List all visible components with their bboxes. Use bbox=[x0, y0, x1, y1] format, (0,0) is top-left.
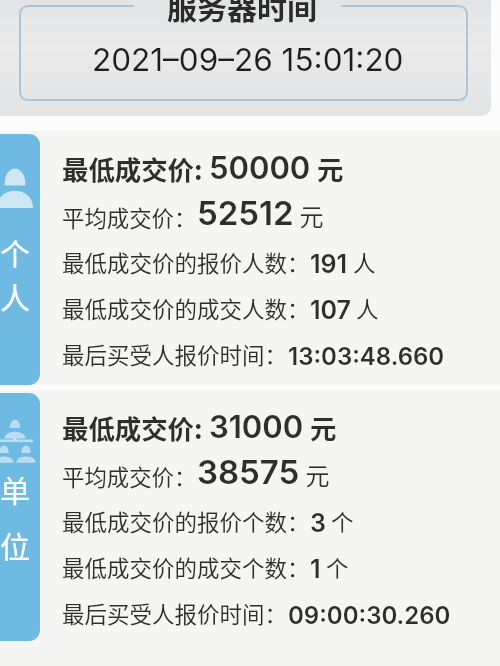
staticText: 09:00:30.260 bbox=[288, 601, 451, 630]
staticText: 元 bbox=[311, 149, 344, 187]
staticText: 最低成交价: bbox=[62, 149, 209, 187]
staticText: 3 bbox=[310, 508, 326, 538]
staticText: 191 bbox=[310, 249, 348, 279]
staticText: 31000 bbox=[209, 408, 304, 446]
staticText: 最后买受人报价时间： bbox=[62, 597, 288, 630]
button[interactable]: 个人 bbox=[0, 134, 40, 385]
staticText: 单 bbox=[0, 467, 30, 510]
staticText: 107 bbox=[310, 295, 351, 325]
staticText: 38575 bbox=[197, 452, 300, 492]
staticText: 最低成交价的报价个数： bbox=[62, 505, 310, 538]
staticText: 1 bbox=[310, 554, 321, 584]
staticText: 最低成交价: bbox=[62, 408, 209, 446]
staticText: 人 bbox=[348, 246, 376, 279]
staticText: 人 bbox=[351, 292, 379, 325]
staticText: 50000 bbox=[209, 149, 311, 187]
staticText: 最低成交价的成交人数： bbox=[62, 292, 310, 325]
staticText: 元 bbox=[304, 408, 337, 446]
staticText: 52512 bbox=[197, 193, 294, 233]
staticText: 服务器时间 bbox=[167, 0, 317, 27]
staticText: 人 bbox=[0, 274, 30, 317]
staticText: 2021–09–26 15:01:20 bbox=[92, 40, 404, 78]
staticText: 最低成交价的成交个数： bbox=[62, 551, 310, 584]
staticText: 个 bbox=[326, 505, 354, 538]
staticText: 最后买受人报价时间： bbox=[62, 338, 288, 371]
staticText: 个 bbox=[321, 551, 349, 584]
button[interactable]: 单位 bbox=[0, 393, 40, 641]
staticText: 平均成交价： bbox=[62, 460, 197, 492]
staticText: 平均成交价： bbox=[62, 201, 197, 233]
staticText: 元 bbox=[294, 198, 324, 233]
staticText: 位 bbox=[0, 523, 30, 566]
staticText: 元 bbox=[300, 457, 330, 492]
staticText: 最低成交价的报价人数： bbox=[62, 246, 310, 279]
staticText: 个 bbox=[0, 230, 30, 273]
staticText: 13:03:48.660 bbox=[288, 342, 445, 371]
